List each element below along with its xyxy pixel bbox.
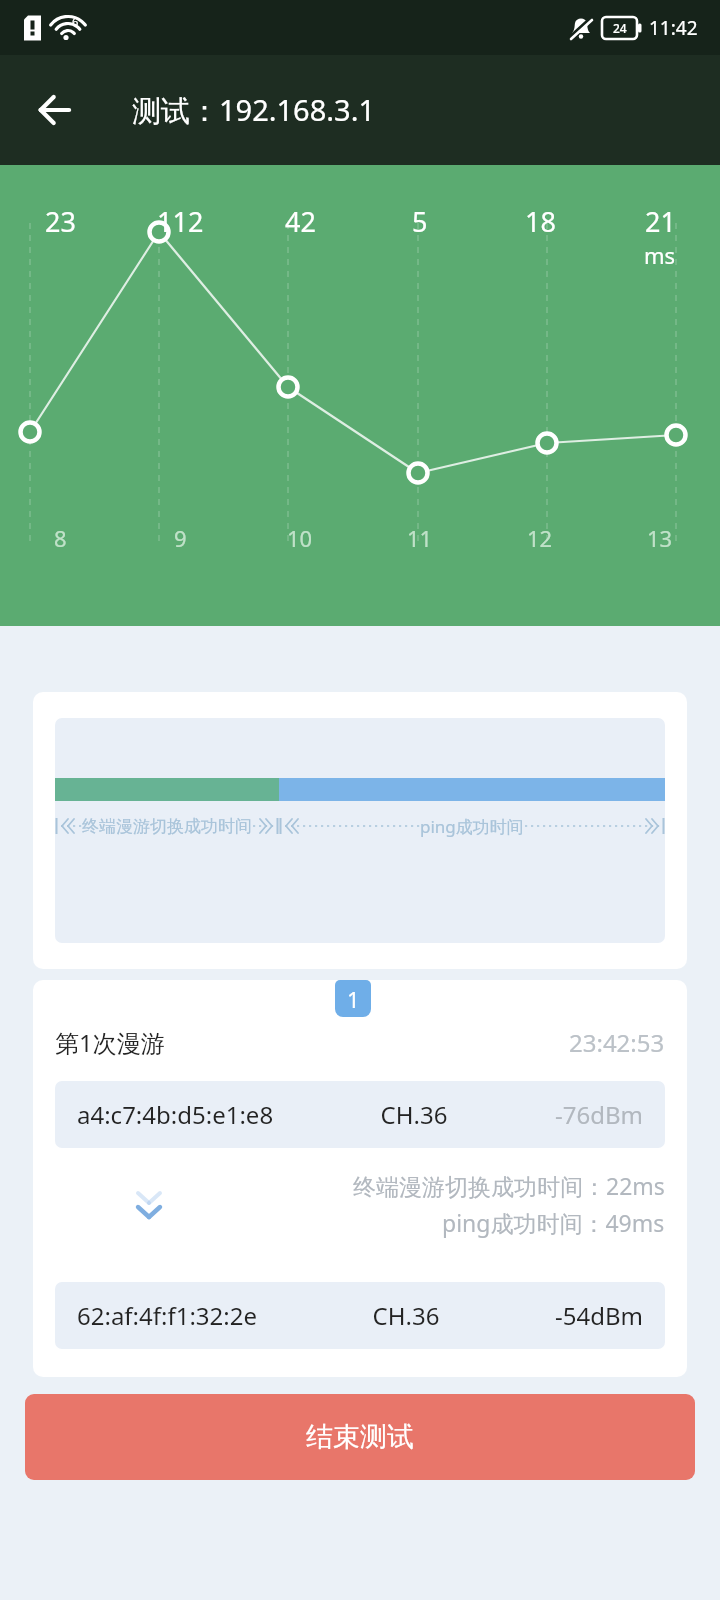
staticText: 23:42:53: [569, 1026, 665, 1059]
staticText: ping成功时间：49ms: [442, 1207, 665, 1238]
staticText: 12: [527, 523, 553, 553]
button[interactable]: Back: [20, 76, 88, 144]
staticText: ping成功时间: [420, 815, 524, 838]
button[interactable]: 62:af:4f:f1:32:2e: [55, 1282, 665, 1349]
staticText: 5: [412, 203, 428, 240]
staticText: 21: [645, 203, 676, 240]
button[interactable]: 结束测试: [25, 1394, 695, 1480]
staticText: 终端漫游切换成功时间：22ms: [353, 1170, 665, 1201]
staticText: 42: [285, 203, 316, 240]
staticText: CH.36: [354, 1098, 474, 1131]
button[interactable]: a4:c7:4b:d5:e1:e8: [55, 1081, 665, 1148]
staticText: CH.36: [346, 1299, 466, 1332]
staticText: a4:c7:4b:d5:e1:e8: [77, 1098, 274, 1131]
staticText: 24: [613, 20, 627, 36]
staticText: 测试：192.168.3.1: [132, 90, 376, 130]
staticText: 终端漫游切换成功时间: [82, 816, 252, 837]
staticText: 13: [647, 523, 673, 553]
staticText: -54dBm: [555, 1299, 643, 1332]
staticText: -76dBm: [555, 1098, 643, 1131]
button[interactable]: Expand roaming details: [127, 1182, 171, 1226]
staticText: 8: [54, 523, 67, 553]
staticText: 18: [525, 203, 556, 240]
staticText: 11: [407, 523, 433, 553]
staticText: 112: [157, 203, 204, 240]
staticText: 第1次漫游: [55, 1026, 165, 1059]
staticText: ms: [644, 240, 676, 270]
staticText: 1: [347, 984, 360, 1014]
staticText: 11:42: [649, 15, 698, 41]
staticText: 9: [174, 523, 187, 553]
staticText: 10: [287, 523, 313, 553]
staticText: 6: [72, 14, 79, 29]
staticText: 62:af:4f:f1:32:2e: [77, 1299, 258, 1332]
staticText: 23: [45, 203, 76, 240]
staticText: 结束测试: [306, 1420, 414, 1454]
